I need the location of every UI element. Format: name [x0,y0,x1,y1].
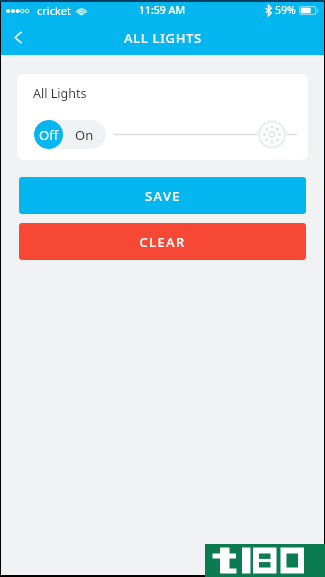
button[interactable]: Back [1,20,34,55]
button[interactable]: Off [34,120,106,149]
staticText: cricket [37,3,71,18]
staticText: SAVE [145,187,181,205]
staticText: ALL LIGHTS [124,29,202,47]
staticText: CLEAR [139,233,186,251]
staticText: Off [39,126,59,144]
staticText: All Lights [33,85,87,102]
staticText: 11:59 AM [139,3,186,17]
button[interactable]: CLEAR [19,223,306,260]
button[interactable]: Brightness [257,120,287,149]
staticText: On [75,126,94,144]
staticText: 59% [275,3,296,17]
button[interactable]: SAVE [19,177,306,214]
